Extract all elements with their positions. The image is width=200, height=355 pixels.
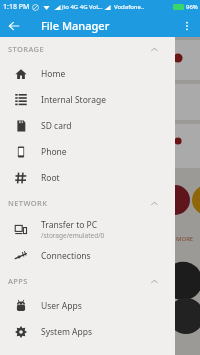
button[interactable]: Transfer to PC: [0, 215, 175, 243]
button[interactable]: Back: [4, 16, 24, 36]
button[interactable]: Internal Storage: [0, 87, 175, 113]
staticText: 96%: [186, 3, 198, 11]
staticText: APPS: [8, 276, 28, 286]
button[interactable]: User Apps: [0, 293, 175, 319]
button[interactable]: More options: [177, 16, 197, 36]
button[interactable]: System Apps: [0, 319, 175, 345]
staticText: 1:18 PM: [3, 2, 30, 12]
staticText: Home: [41, 68, 66, 80]
staticText: Phone: [41, 146, 67, 158]
staticText: /storage/emulated/0: [41, 231, 105, 240]
staticText: File Manager: [41, 18, 110, 33]
button[interactable]: Root: [0, 165, 175, 191]
button[interactable]: Phone: [0, 139, 175, 165]
button[interactable]: NETWORK: [0, 191, 175, 215]
button[interactable]: Connections: [0, 243, 175, 269]
staticText: Vodafone..: [114, 3, 145, 11]
button[interactable]: SD card: [0, 113, 175, 139]
staticText: Jio 4G 4G VoL..: [62, 3, 103, 11]
staticText: Root: [41, 172, 60, 184]
button[interactable]: Home: [0, 61, 175, 87]
staticText: System Apps: [41, 326, 93, 338]
staticText: User Apps: [41, 300, 82, 312]
staticText: SD card: [41, 120, 72, 132]
staticText: Internal Storage: [41, 94, 106, 106]
staticText: MORE: [176, 235, 194, 243]
staticText: NETWORK: [8, 198, 48, 208]
button[interactable]: APPS: [0, 269, 175, 293]
staticText: Transfer to PC: [41, 219, 98, 231]
staticText: STORAGE: [8, 44, 45, 54]
button[interactable]: STORAGE: [0, 37, 175, 61]
staticText: Connections: [41, 250, 91, 262]
